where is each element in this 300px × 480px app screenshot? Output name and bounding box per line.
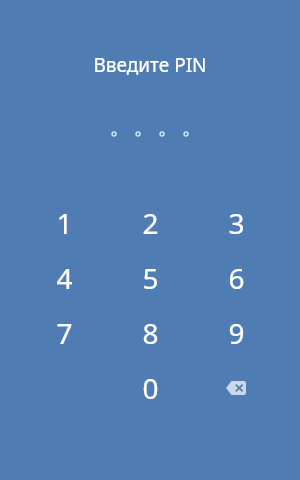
staticText: 9 xyxy=(228,314,245,352)
button[interactable]: 0 xyxy=(107,360,193,415)
button[interactable]: 6 xyxy=(193,250,279,305)
button[interactable]: Delete xyxy=(193,360,279,415)
button[interactable]: 1 xyxy=(21,195,107,250)
staticText: 3 xyxy=(228,204,245,242)
staticText: 1 xyxy=(56,204,73,242)
staticText: 5 xyxy=(142,259,159,297)
button[interactable]: 2 xyxy=(107,195,193,250)
staticText: 2 xyxy=(142,204,159,242)
button[interactable]: 8 xyxy=(107,305,193,360)
staticText: 6 xyxy=(228,259,245,297)
staticText: 0 xyxy=(142,369,159,407)
button[interactable]: 7 xyxy=(21,305,107,360)
staticText: Введите PIN xyxy=(93,52,207,78)
staticText: 4 xyxy=(56,259,73,297)
button[interactable]: 4 xyxy=(21,250,107,305)
button[interactable]: 9 xyxy=(193,305,279,360)
button[interactable]: 5 xyxy=(107,250,193,305)
staticText: 7 xyxy=(56,314,73,352)
button[interactable]: 3 xyxy=(193,195,279,250)
staticText: 8 xyxy=(142,314,159,352)
